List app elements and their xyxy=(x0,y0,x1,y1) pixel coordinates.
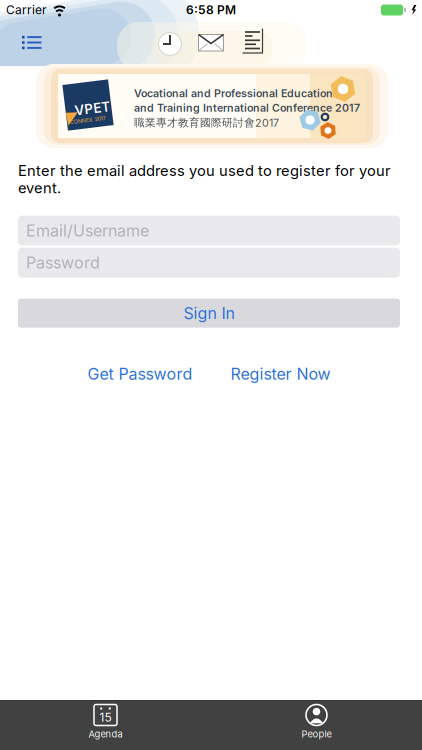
button[interactable]: Recent xyxy=(155,29,185,59)
button[interactable]: 15 xyxy=(0,700,211,750)
button[interactable]: Messages xyxy=(196,31,226,55)
staticText: Password xyxy=(26,253,100,272)
staticText: CONNEX 2017 xyxy=(68,117,104,123)
staticText: VPET xyxy=(74,101,110,117)
staticText: 6:58 PM xyxy=(186,3,236,17)
staticText: Get Password xyxy=(87,365,192,383)
staticText: Carrier xyxy=(6,3,47,17)
staticText: Register Now xyxy=(230,365,330,383)
staticText: Email/Username xyxy=(26,221,149,240)
button[interactable]: Email/Username xyxy=(18,216,400,246)
button[interactable]: Menu xyxy=(10,25,54,61)
staticText: Enter the email address you used to regi… xyxy=(18,162,391,197)
staticText: Vocational and Professional Education xyxy=(134,87,333,100)
staticText: 15 xyxy=(99,710,111,725)
button[interactable]: Password xyxy=(18,248,400,278)
staticText: Sign In xyxy=(183,304,234,323)
staticText: 職業專才教育國際研討會2017 xyxy=(134,116,279,129)
button[interactable]: Register Now xyxy=(230,365,330,383)
button[interactable]: People xyxy=(211,700,422,750)
staticText: People xyxy=(301,728,331,739)
button[interactable]: Sign In xyxy=(18,299,400,328)
staticText: and Training International Conference 20… xyxy=(134,102,360,114)
staticText: Agenda xyxy=(88,728,122,739)
button[interactable]: Get Password xyxy=(87,365,192,383)
button[interactable]: Notes xyxy=(241,27,265,55)
